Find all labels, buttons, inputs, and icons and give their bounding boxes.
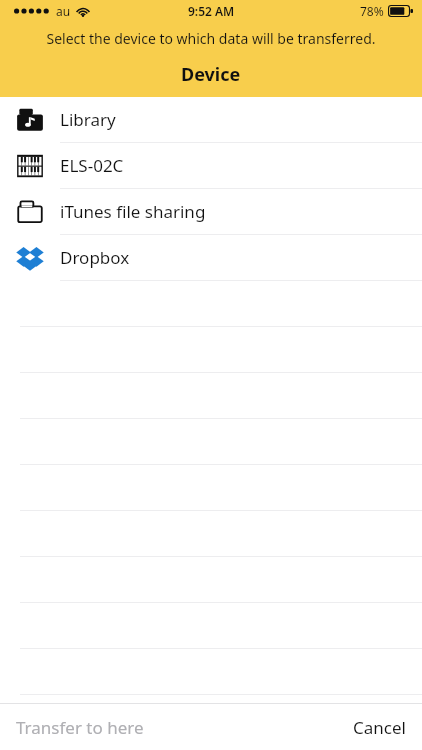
staticText: ELS-02C (60, 154, 124, 177)
button[interactable]: iTunes file sharing (0, 189, 422, 234)
staticText: 9:52 AM (188, 3, 235, 19)
staticText: 78% (360, 3, 384, 19)
button[interactable]: ELS-02C (0, 143, 422, 188)
staticText: Cancel (353, 716, 406, 739)
staticText: Library (60, 108, 116, 131)
staticText: Device (181, 62, 241, 87)
button[interactable]: Library (0, 97, 422, 142)
staticText: Select the device to which data will be … (0, 29, 422, 48)
staticText: Transfer to here (16, 716, 144, 739)
staticText: Dropbox (60, 246, 130, 269)
button[interactable]: Cancel (345, 708, 414, 747)
staticText: iTunes file sharing (60, 200, 206, 223)
button[interactable]: Dropbox (0, 235, 422, 280)
staticText: au (56, 3, 71, 19)
button[interactable]: Transfer to here (8, 708, 152, 747)
